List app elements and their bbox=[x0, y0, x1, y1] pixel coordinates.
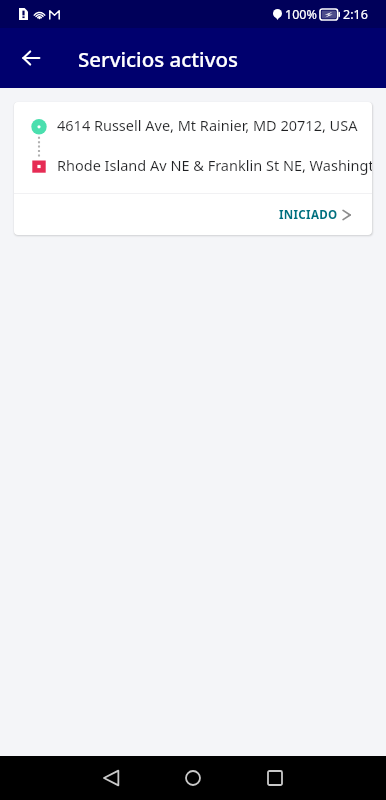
staticText: Rhode Island Av NE & Franklin St NE, Was… bbox=[57, 155, 372, 175]
button[interactable]: Back bbox=[14, 41, 48, 75]
button[interactable]: INICIADO bbox=[265, 199, 372, 231]
button[interactable]: Home bbox=[171, 756, 215, 800]
staticText: INICIADO bbox=[279, 207, 338, 223]
staticText: 2:16 bbox=[343, 6, 368, 23]
button[interactable]: Recent apps bbox=[253, 756, 297, 800]
staticText: Servicios activos bbox=[78, 45, 238, 73]
button[interactable]: 4614 Russell Ave, Mt Rainier, MD 20712, … bbox=[14, 102, 372, 235]
staticText: 100% bbox=[285, 6, 317, 23]
button[interactable]: Back bbox=[89, 756, 133, 800]
staticText: 4614 Russell Ave, Mt Rainier, MD 20712, … bbox=[57, 115, 358, 135]
